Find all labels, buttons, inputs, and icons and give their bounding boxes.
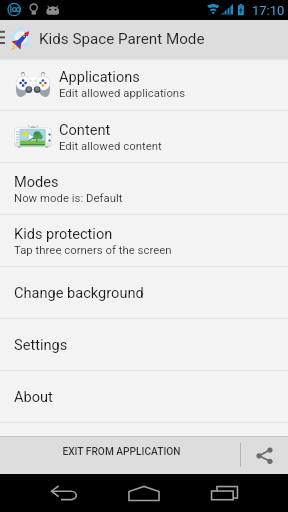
staticText: Edit allowed applications: [59, 86, 186, 99]
staticText: Kids protection: [14, 225, 113, 242]
staticText: 17:10: [252, 3, 285, 18]
button[interactable]: Settings: [0, 319, 288, 370]
staticText: Change background: [14, 284, 144, 301]
button[interactable]: Kids protection: [0, 215, 288, 266]
button[interactable]: Recent apps: [184, 474, 264, 512]
staticText: Modes: [14, 173, 59, 190]
button[interactable]: Back: [24, 474, 104, 512]
staticText: Settings: [14, 336, 68, 353]
staticText: Kids Space Parent Mode: [39, 30, 205, 48]
staticText: Applications: [59, 68, 140, 85]
button[interactable]: Modes: [0, 163, 288, 214]
button[interactable]: Applications: [0, 58, 288, 110]
button[interactable]: Home: [104, 474, 184, 512]
staticText: About: [14, 388, 53, 405]
staticText: Content: [59, 121, 111, 138]
staticText: Tap three corners of the screen: [14, 243, 172, 256]
button[interactable]: EXIT FROM APPLICATION: [0, 436, 240, 474]
button[interactable]: About: [0, 371, 288, 422]
button[interactable]: Content: [0, 111, 288, 162]
button[interactable]: Share: [241, 436, 288, 474]
staticText: Now mode is: Default: [14, 191, 123, 204]
button[interactable]: Change background: [0, 267, 288, 318]
button[interactable]: Navigate up: [0, 20, 5, 58]
staticText: Edit allowed content: [59, 139, 162, 152]
staticText: EXIT FROM APPLICATION: [62, 446, 181, 458]
